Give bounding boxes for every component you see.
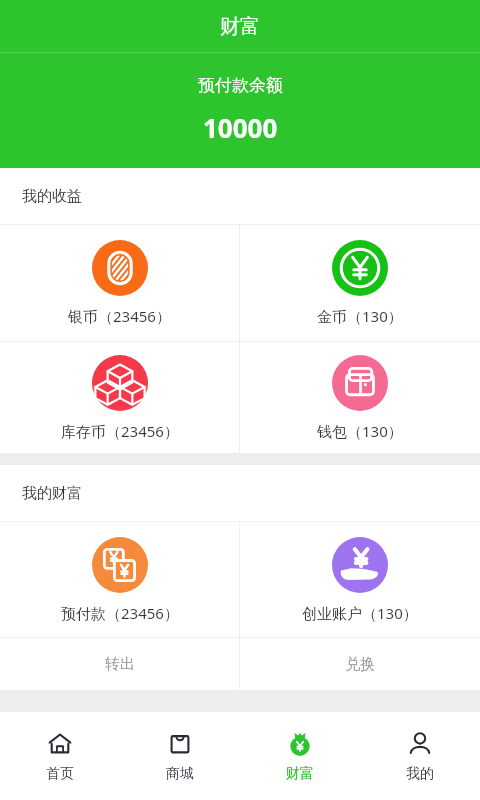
button[interactable]: 首页 — [0, 712, 120, 800]
staticText: 兑换 — [345, 655, 375, 674]
button[interactable]: 银币 — [0, 225, 239, 341]
other: 首页 — [46, 730, 74, 758]
other: 商城 — [166, 730, 194, 758]
staticText: 财富 — [220, 14, 260, 39]
staticText: 金币（130） — [317, 306, 403, 326]
other: 我的 — [406, 730, 434, 758]
staticText: 我的收益 — [22, 187, 82, 206]
button[interactable]: 兑换 — [240, 638, 480, 690]
staticText: 创业账户（130） — [302, 603, 418, 623]
other: 金币 — [332, 240, 388, 296]
staticText: 我的 — [406, 765, 434, 783]
staticText: 预付款（23456） — [61, 603, 179, 623]
button[interactable]: 金币 — [240, 225, 480, 341]
other: 预付款 — [92, 537, 148, 593]
button[interactable]: 库存币 — [0, 342, 239, 453]
button[interactable]: 我的 — [360, 712, 480, 800]
other: 钱包 — [332, 355, 388, 411]
button[interactable]: 钱包 — [240, 342, 480, 453]
other: 银币 — [92, 240, 148, 296]
button[interactable]: 预付款 — [0, 522, 239, 637]
other: 库存币 — [92, 355, 148, 411]
button[interactable]: 财富 — [240, 712, 360, 800]
other: 财富 — [286, 730, 314, 758]
button[interactable]: 创业账户 — [240, 522, 480, 637]
staticText: 首页 — [46, 765, 74, 783]
staticText: 预付款余额 — [198, 75, 283, 96]
other: 创业账户 — [332, 537, 388, 593]
staticText: 钱包（130） — [317, 421, 403, 441]
staticText: 我的财富 — [22, 484, 82, 503]
staticText: 商城 — [166, 765, 194, 783]
staticText: 转出 — [105, 655, 135, 674]
staticText: 银币（23456） — [68, 306, 171, 326]
staticText: 10000 — [203, 110, 278, 145]
staticText: 库存币（23456） — [61, 421, 179, 441]
staticText: 财富 — [286, 765, 314, 783]
button[interactable]: 商城 — [120, 712, 240, 800]
button[interactable]: 转出 — [0, 638, 239, 690]
